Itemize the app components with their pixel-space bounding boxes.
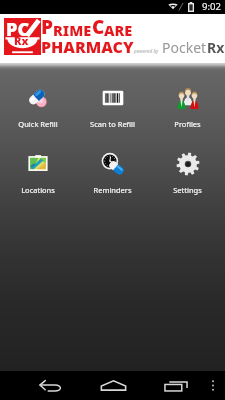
staticText: PC (6, 17, 30, 42)
staticText: RIME (53, 20, 92, 40)
button[interactable]: Back (32, 371, 68, 400)
staticText: Reminders (93, 185, 132, 195)
button[interactable]: Scan to Refill (75, 86, 150, 129)
staticText: ARE (104, 20, 133, 40)
staticText: Profiles (174, 119, 201, 129)
staticText: Rx (207, 38, 225, 57)
staticText: PHARMACY (41, 36, 134, 58)
button[interactable]: Locations (0, 152, 75, 195)
staticText: powered by (134, 48, 159, 54)
button[interactable]: Recent apps (158, 371, 194, 400)
button[interactable]: More options (203, 371, 222, 400)
button[interactable]: Home (95, 371, 131, 400)
staticText: Settings (173, 185, 202, 195)
staticText: C (92, 14, 105, 40)
button[interactable]: Profiles (150, 86, 225, 129)
staticText: 9:02 (202, 0, 221, 13)
button[interactable]: Quick Refill (0, 86, 75, 129)
button[interactable]: Reminders (75, 152, 150, 195)
staticText: Rx (14, 33, 29, 48)
staticText: P (41, 14, 54, 40)
staticText: Scan to Refill (90, 119, 135, 129)
staticText: Quick Refill (18, 119, 58, 129)
staticText: Locations (21, 185, 55, 195)
staticText: Pocket (162, 38, 207, 57)
button[interactable]: Settings (150, 152, 225, 195)
